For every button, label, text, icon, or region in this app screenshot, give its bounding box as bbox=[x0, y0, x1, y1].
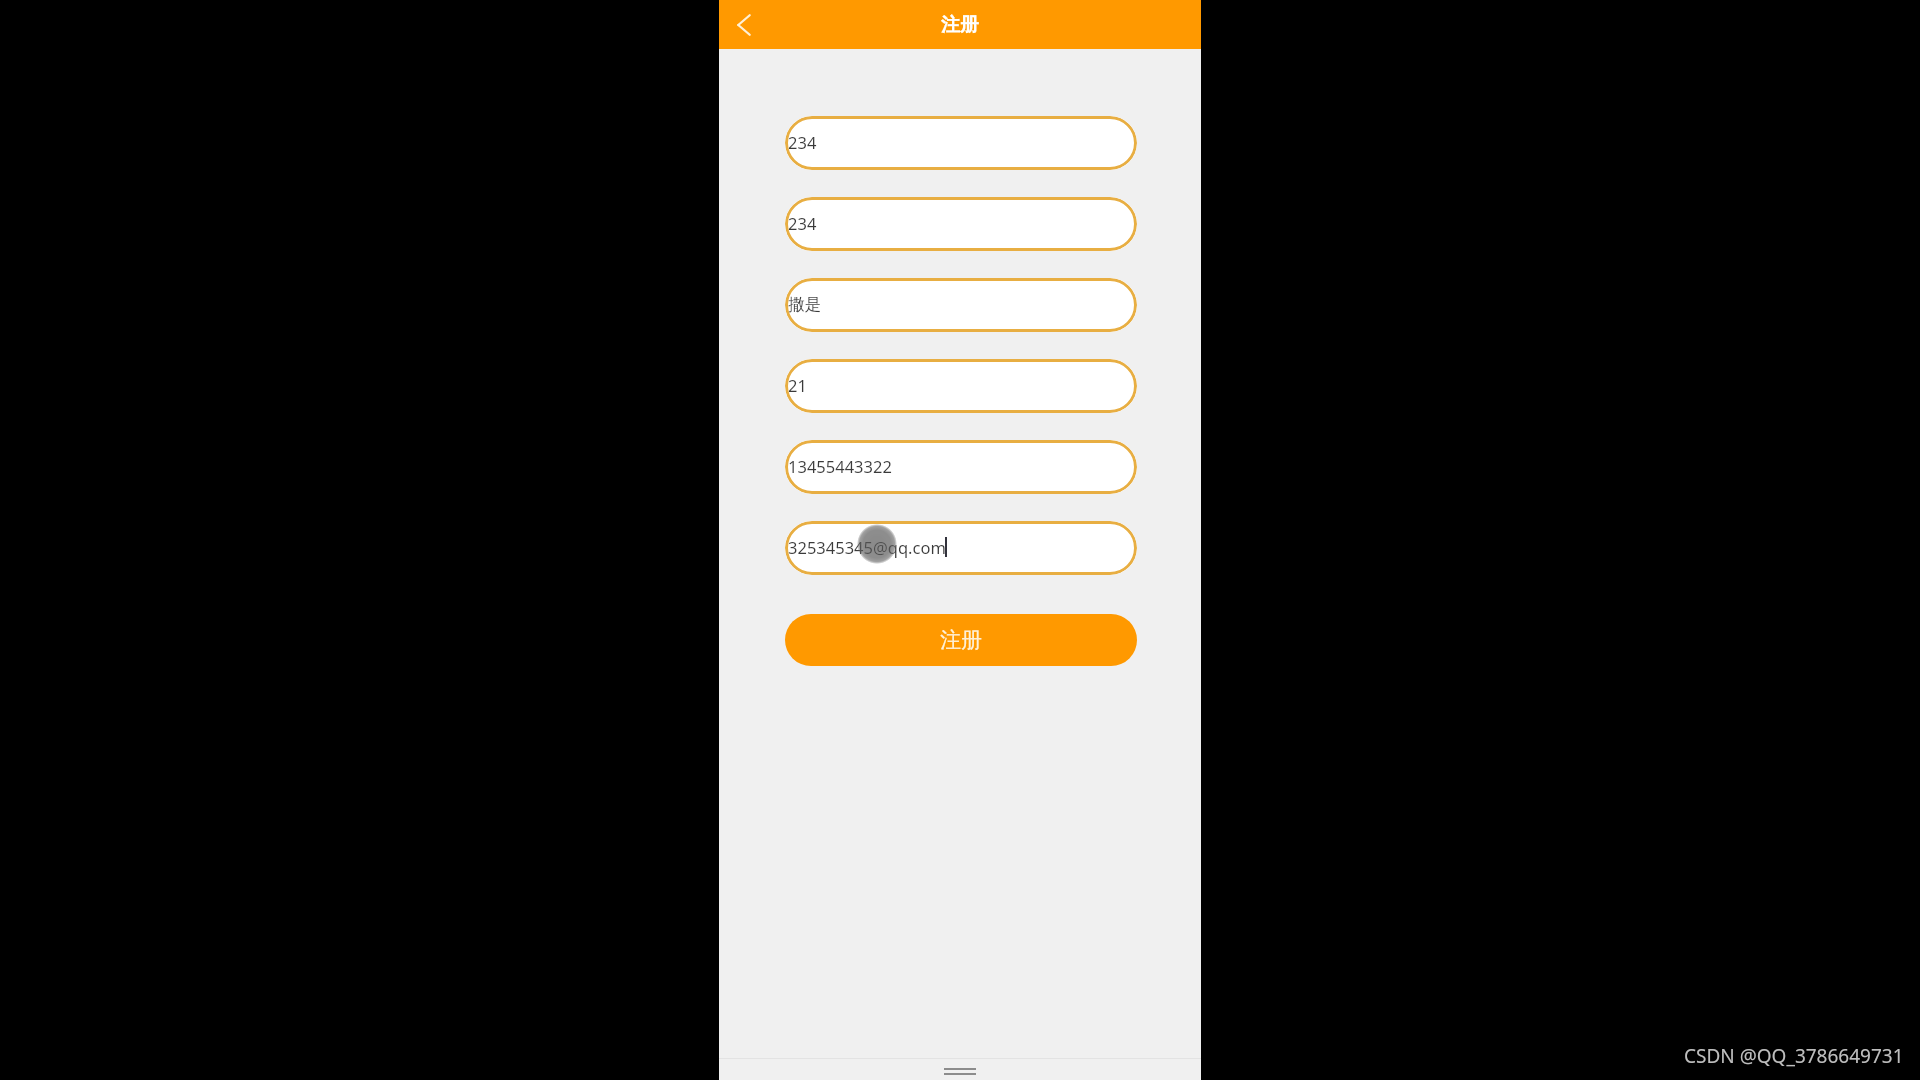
button[interactable]: Back bbox=[721, 2, 766, 47]
button[interactable]: 注册 bbox=[785, 614, 1137, 666]
staticText: 撒是 bbox=[788, 294, 821, 315]
button[interactable]: 撒是 bbox=[785, 278, 1137, 332]
staticText: 234 bbox=[788, 131, 817, 153]
staticText: 注册 bbox=[941, 13, 979, 37]
button[interactable]: 234 bbox=[785, 116, 1137, 170]
staticText: 13455443322 bbox=[788, 455, 892, 477]
button[interactable]: 325345345@qq.com bbox=[785, 521, 1137, 575]
button[interactable]: 21 bbox=[785, 359, 1137, 413]
staticText: 325345345@qq.com bbox=[788, 536, 946, 558]
button[interactable]: 234 bbox=[785, 197, 1137, 251]
staticText: 注册 bbox=[940, 627, 982, 653]
staticText: 21 bbox=[788, 374, 807, 396]
staticText: 234 bbox=[788, 212, 817, 234]
staticText: CSDN @QQ_3786649731 bbox=[1684, 1043, 1904, 1069]
button[interactable]: 13455443322 bbox=[785, 440, 1137, 494]
